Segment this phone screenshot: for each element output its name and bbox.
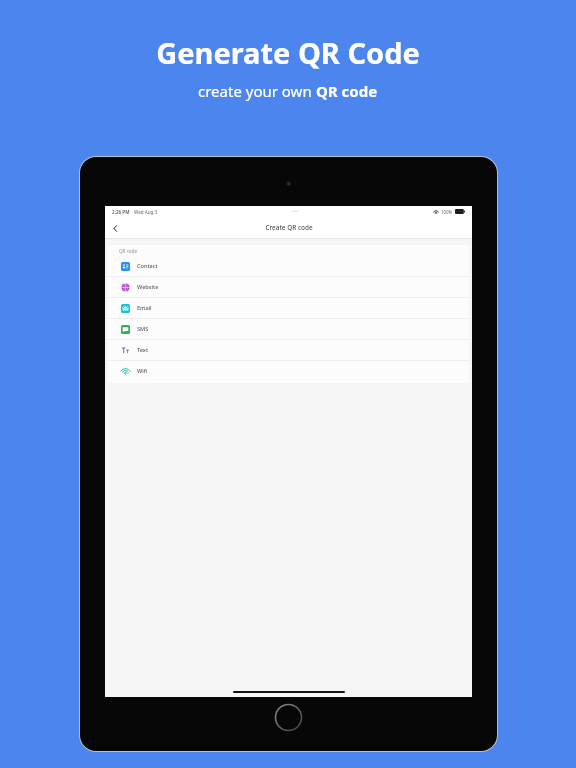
button[interactable]: SMS bbox=[108, 319, 469, 339]
staticText: Text bbox=[137, 346, 149, 354]
staticText: Create QR code bbox=[265, 223, 313, 232]
staticText: create your own bbox=[198, 81, 316, 101]
staticText: • • • bbox=[292, 209, 298, 214]
staticText: Wed Aug 3 bbox=[134, 209, 158, 215]
button[interactable]: Wifi bbox=[108, 361, 469, 381]
staticText: Generate QR Code bbox=[156, 33, 420, 72]
staticText: QR code bbox=[316, 81, 378, 101]
button[interactable]: Home bbox=[274, 703, 303, 732]
staticText: Contact bbox=[137, 262, 158, 270]
staticText: Wifi bbox=[137, 367, 148, 375]
staticText: 100% bbox=[441, 209, 453, 215]
staticText: 2:26 PM bbox=[112, 209, 130, 215]
button[interactable]: Website bbox=[108, 277, 469, 297]
button[interactable]: Email bbox=[108, 298, 469, 318]
button[interactable]: Contact bbox=[108, 256, 469, 276]
button[interactable]: Back bbox=[108, 221, 122, 235]
button[interactable]: Text bbox=[108, 340, 469, 360]
staticText: Email bbox=[137, 304, 152, 312]
staticText: QR code bbox=[119, 248, 138, 254]
staticText: SMS bbox=[137, 325, 149, 333]
staticText: Website bbox=[137, 283, 159, 291]
